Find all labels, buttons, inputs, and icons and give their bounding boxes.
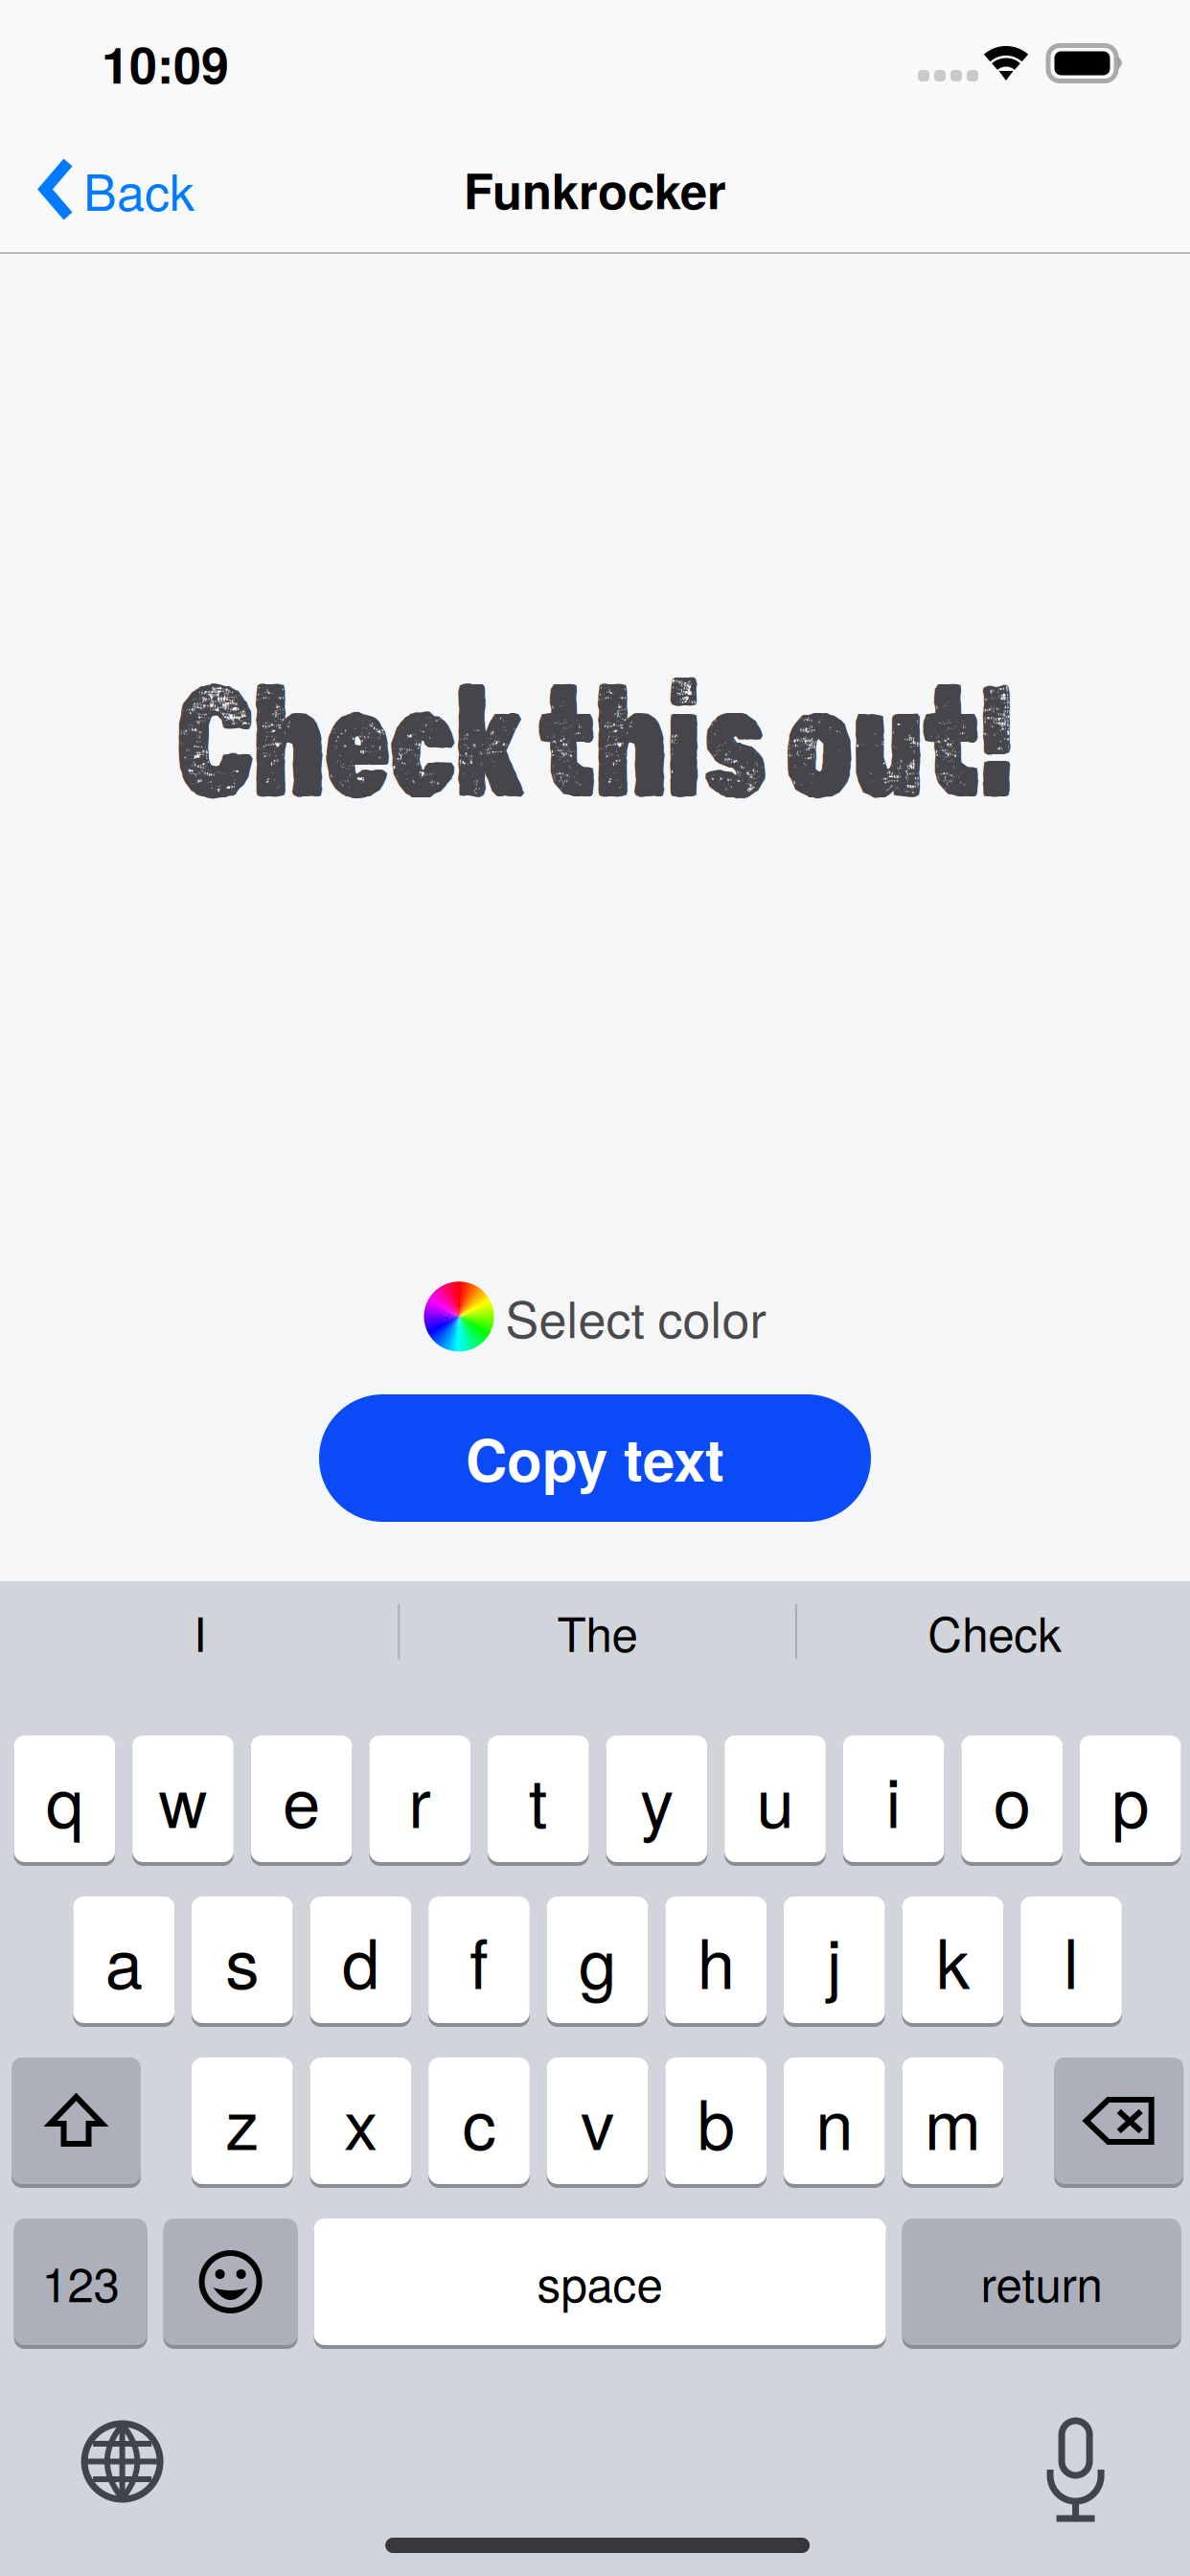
button[interactable]: n: [784, 2056, 885, 2186]
staticText: The: [557, 1598, 638, 1665]
button[interactable]: Delete: [1054, 2056, 1183, 2186]
button[interactable]: The: [400, 1581, 795, 1682]
button[interactable]: r: [369, 1734, 470, 1864]
staticText: z: [225, 2072, 259, 2169]
button[interactable]: i: [843, 1734, 944, 1864]
staticText: Check this out!: [177, 680, 1015, 805]
staticText: Funkrocker: [464, 154, 726, 224]
staticText: space: [537, 2248, 663, 2316]
staticText: i: [886, 1750, 901, 1847]
button[interactable]: f: [428, 1895, 530, 2025]
button[interactable]: p: [1080, 1734, 1181, 1864]
staticText: s: [225, 1911, 259, 2008]
button[interactable]: k: [902, 1895, 1003, 2025]
button[interactable]: m: [902, 2056, 1003, 2186]
button[interactable]: c: [428, 2056, 530, 2186]
button[interactable]: t: [488, 1734, 589, 1864]
staticText: y: [640, 1750, 673, 1847]
staticText: Back: [83, 154, 195, 225]
button[interactable]: e: [251, 1734, 352, 1864]
button[interactable]: h: [665, 1895, 767, 2025]
button[interactable]: Dictation: [1046, 2405, 1190, 2518]
button[interactable]: x: [310, 2056, 411, 2186]
staticText: x: [344, 2072, 377, 2169]
staticText: r: [408, 1750, 431, 1847]
staticText: t: [529, 1750, 548, 1847]
staticText: k: [936, 1911, 970, 2008]
button[interactable]: Next keyboard: [2, 2407, 162, 2516]
button[interactable]: d: [310, 1895, 411, 2025]
button[interactable]: a: [73, 1895, 174, 2025]
staticText: c: [462, 2072, 496, 2169]
staticText: f: [469, 1911, 489, 2008]
button[interactable]: b: [665, 2056, 767, 2186]
button[interactable]: o: [961, 1734, 1063, 1864]
button[interactable]: j: [784, 1895, 885, 2025]
button[interactable]: u: [725, 1734, 826, 1864]
button[interactable]: Shift: [11, 2056, 141, 2186]
staticText: Select color: [505, 1281, 766, 1352]
staticText: p: [1112, 1750, 1149, 1847]
button[interactable]: 123: [14, 2217, 147, 2347]
button[interactable]: Check: [797, 1581, 1190, 1682]
staticText: 10:09: [102, 28, 229, 99]
button[interactable]: l: [1021, 1895, 1122, 2025]
button[interactable]: Copy text: [319, 1394, 871, 1522]
staticText: e: [283, 1750, 320, 1847]
button[interactable]: q: [14, 1734, 115, 1864]
button[interactable]: z: [192, 2056, 293, 2186]
staticText: b: [697, 2072, 735, 2169]
staticText: n: [816, 2072, 853, 2169]
button[interactable]: return: [902, 2217, 1181, 2347]
button[interactable]: w: [132, 1734, 234, 1864]
staticText: w: [159, 1750, 207, 1847]
staticText: j: [827, 1911, 842, 2008]
staticText: l: [1064, 1911, 1079, 2008]
staticText: q: [46, 1750, 83, 1847]
button[interactable]: g: [547, 1895, 648, 2025]
staticText: Check this out!: [175, 680, 1013, 805]
staticText: v: [581, 2072, 614, 2169]
staticText: d: [342, 1911, 379, 2008]
button[interactable]: Select color: [405, 1267, 785, 1366]
staticText: a: [105, 1911, 142, 2008]
staticText: u: [756, 1750, 794, 1847]
button[interactable]: space: [314, 2217, 886, 2347]
staticText: Check: [928, 1598, 1062, 1665]
staticText: g: [579, 1911, 616, 2008]
staticText: 123: [42, 2248, 119, 2316]
staticText: return: [981, 2248, 1102, 2316]
button[interactable]: I: [2, 1581, 398, 1682]
staticText: Copy text: [466, 1417, 724, 1499]
button[interactable]: v: [547, 2056, 648, 2186]
staticText: h: [697, 1911, 735, 2008]
button[interactable]: Back: [0, 137, 216, 242]
button[interactable]: Emoji: [163, 2217, 298, 2347]
staticText: I: [193, 1598, 207, 1665]
button[interactable]: s: [192, 1895, 293, 2025]
button[interactable]: y: [606, 1734, 707, 1864]
staticText: m: [925, 2072, 981, 2169]
staticText: o: [993, 1750, 1031, 1847]
